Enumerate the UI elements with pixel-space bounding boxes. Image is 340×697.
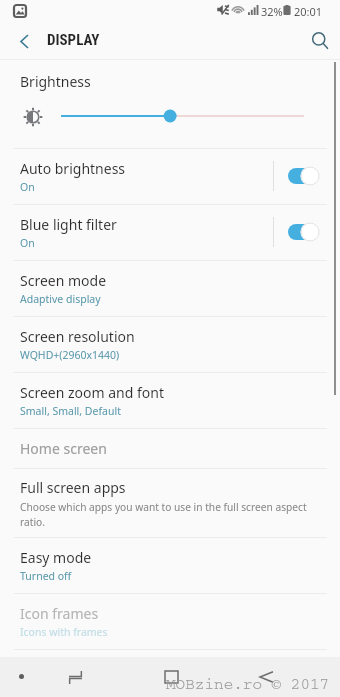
button[interactable]: Back — [254, 665, 278, 689]
staticText: On — [20, 180, 35, 194]
staticText: Home screen — [20, 439, 107, 458]
staticText: WQHD+(2960x1440) — [20, 348, 120, 362]
button[interactable]: Blue light filter — [0, 204, 340, 260]
staticText: Icons with frames — [20, 625, 108, 639]
staticText: Full screen apps — [20, 478, 126, 497]
staticText: 32% — [261, 4, 283, 19]
staticText: Choose which apps you want to use in the… — [20, 500, 318, 529]
button[interactable]: Brightness — [0, 60, 340, 148]
staticText: Screen zoom and font — [20, 383, 164, 402]
button[interactable]: Icon frames — [0, 593, 340, 649]
staticText: Auto brightness — [20, 159, 126, 178]
button[interactable]: Auto brightness — [0, 148, 340, 204]
staticText: Turned off — [20, 569, 72, 583]
staticText: Adaptive display — [20, 292, 101, 306]
staticText: DISPLAY — [47, 31, 100, 49]
staticText: 20:01 — [294, 4, 323, 19]
staticText: Blue light filter — [20, 215, 117, 234]
staticText: Screen mode — [20, 271, 107, 290]
staticText: Screen resolution — [20, 327, 135, 346]
button[interactable]: Screen zoom and font — [0, 372, 340, 428]
staticText: On — [20, 236, 35, 250]
staticText: Easy mode — [20, 548, 92, 567]
button[interactable]: Full screen apps — [0, 468, 340, 537]
button[interactable]: Easy mode — [0, 537, 340, 593]
button[interactable]: Home — [159, 665, 183, 689]
button[interactable]: Auto brightness switch, on — [274, 148, 340, 204]
staticText: Brightness — [20, 72, 91, 91]
button[interactable]: Recent apps — [63, 665, 87, 689]
button[interactable]: Screen resolution — [0, 316, 340, 372]
staticText: Icon frames — [20, 604, 99, 623]
staticText: Small, Small, Default — [20, 404, 121, 418]
button[interactable]: Blue light filter switch, on — [274, 204, 340, 260]
button[interactable]: Screen mode — [0, 260, 340, 316]
button[interactable]: Navigate up — [5, 22, 41, 60]
button[interactable]: Search — [300, 22, 340, 60]
staticText: MOBzine.ro © 2017 — [166, 676, 330, 694]
